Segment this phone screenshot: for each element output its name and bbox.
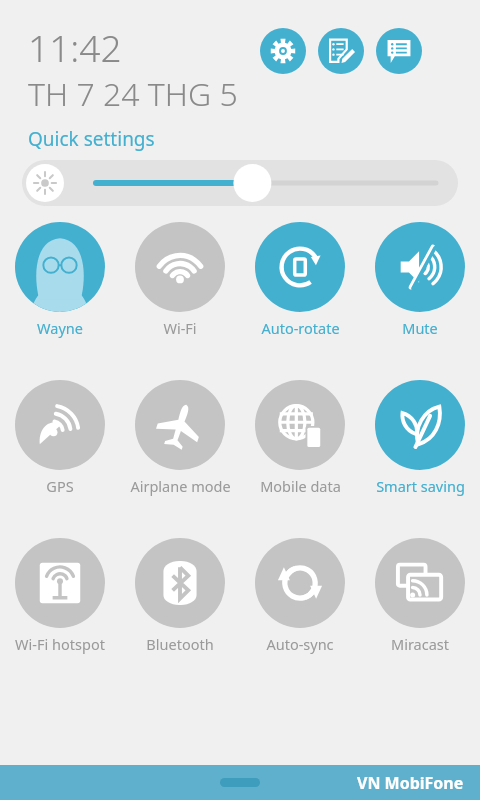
staticText: Miracast — [391, 634, 449, 654]
button[interactable]: Settings — [260, 28, 306, 74]
button[interactable]: Mute — [360, 222, 480, 338]
staticText: Airplane mode — [130, 476, 231, 496]
staticText: GPS — [46, 476, 74, 496]
staticText: Wi-Fi — [163, 318, 197, 338]
staticText: Wayne — [37, 318, 83, 338]
staticText: TH 7 24 THG 5 — [28, 72, 238, 116]
staticText: Quick settings — [28, 126, 155, 152]
staticText: Smart saving — [376, 476, 465, 496]
staticText: Auto-sync — [266, 634, 334, 654]
button[interactable]: Wayne — [0, 222, 120, 338]
staticText: Bluetooth — [146, 634, 214, 654]
staticText: 11:42 — [28, 22, 122, 72]
staticText: VN MobiFone — [357, 772, 464, 794]
button[interactable]: Auto-sync — [240, 538, 360, 654]
button[interactable]: Smart saving — [360, 380, 480, 496]
staticText: Wi-Fi hotspot — [15, 634, 105, 654]
staticText: Auto-rotate — [261, 318, 340, 338]
button[interactable]: Bluetooth — [120, 538, 240, 654]
staticText: Mobile data — [260, 476, 341, 496]
button[interactable]: Wi-Fi — [120, 222, 240, 338]
button[interactable]: Edit notifications — [318, 28, 364, 74]
staticText: Mute — [402, 318, 438, 338]
button[interactable]: Airplane mode — [120, 380, 240, 496]
button[interactable]: Wi-Fi hotspot — [0, 538, 120, 654]
button[interactable]: Miracast — [360, 538, 480, 654]
button[interactable]: Mobile data — [240, 380, 360, 496]
button[interactable] — [22, 160, 458, 206]
button[interactable]: Notifications — [376, 28, 422, 74]
button[interactable]: Auto-rotate — [240, 222, 360, 338]
button[interactable]: GPS — [0, 380, 120, 496]
